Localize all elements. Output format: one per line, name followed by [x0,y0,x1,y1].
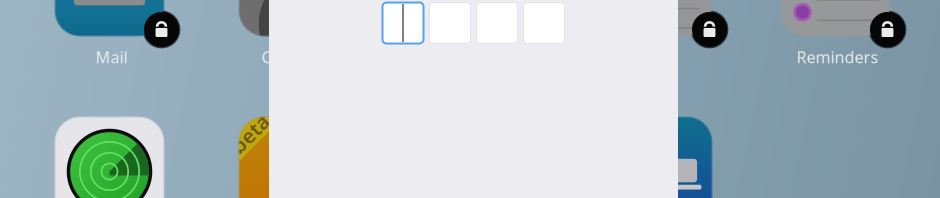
staticText: Reminders [796,46,878,68]
staticText: beta [229,120,274,147]
staticText: beta [226,119,271,145]
staticText: beta [229,119,274,145]
staticText: beta [228,119,273,145]
staticText: beta [229,121,274,148]
button[interactable]: Passcode digit [476,2,517,43]
staticText: beta [226,121,271,148]
button[interactable]: Passcode digit [523,2,564,43]
staticText: Mail [95,46,127,68]
staticText: Calendar [261,46,329,68]
staticText: beta [228,120,273,147]
staticText: beta [226,120,271,147]
button[interactable]: Passcode digit 1 [382,2,423,43]
staticText: beta [228,121,273,148]
button[interactable]: Passcode digit [429,2,470,43]
